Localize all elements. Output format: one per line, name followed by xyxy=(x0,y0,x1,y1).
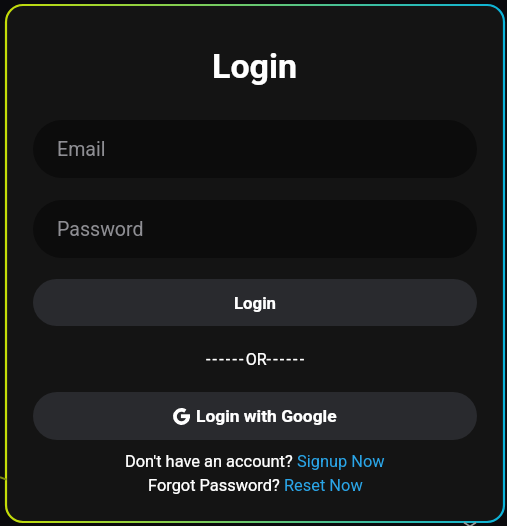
button[interactable]: Google xyxy=(33,392,477,440)
other: Google xyxy=(173,408,190,425)
staticText: Email xyxy=(57,138,106,161)
staticText: Login xyxy=(234,293,277,313)
staticText: Forgot Password? xyxy=(148,476,284,495)
button[interactable]: Email xyxy=(33,120,477,178)
staticText: Password xyxy=(57,218,144,241)
staticText: Don't have an account? xyxy=(125,452,297,471)
button[interactable]: Login xyxy=(33,279,477,326)
staticText: Login xyxy=(212,46,298,86)
button[interactable]: Signup Now xyxy=(297,452,385,471)
button[interactable]: Reset Now xyxy=(284,476,363,495)
staticText: ------OR------ xyxy=(206,350,305,369)
staticText: Login with Google xyxy=(196,406,337,426)
button[interactable]: Password xyxy=(33,200,477,258)
